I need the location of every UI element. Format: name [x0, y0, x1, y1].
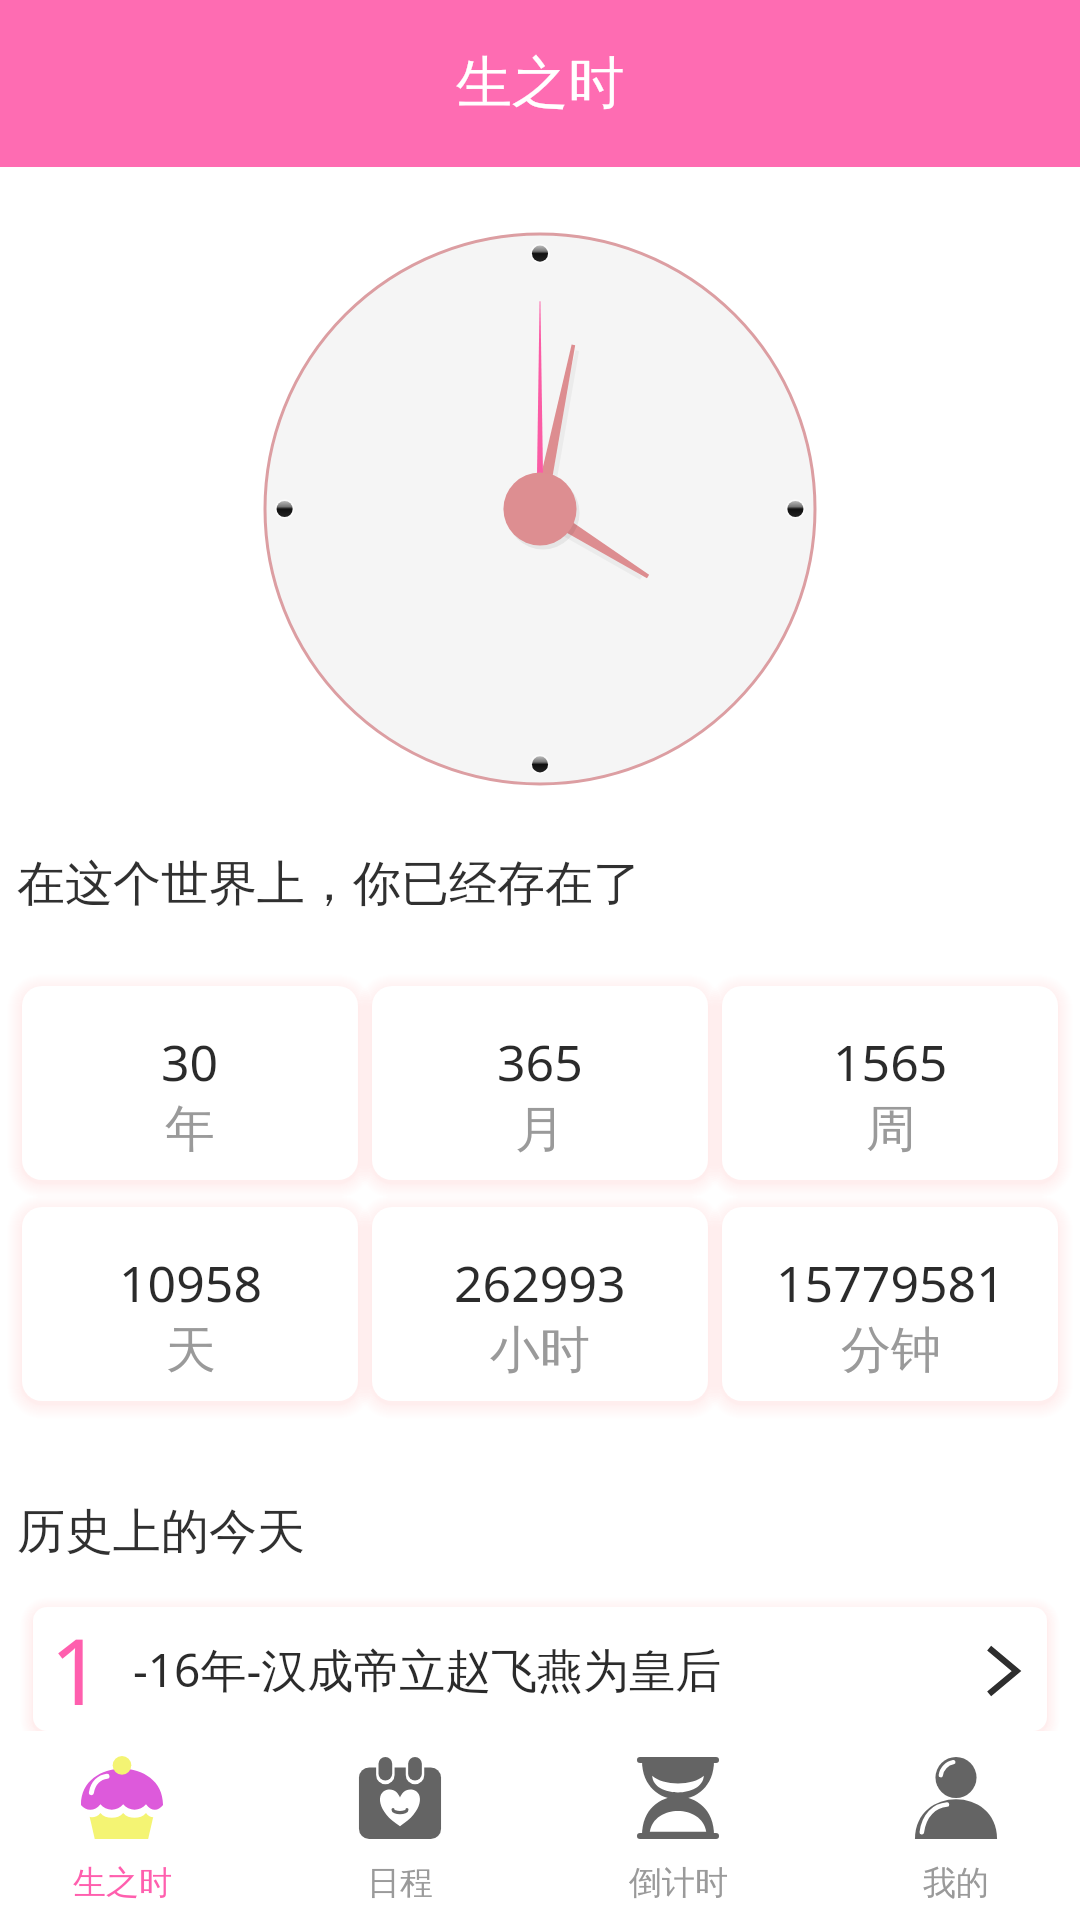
staticText: 在这个世界上，你已经存在了 [17, 854, 641, 914]
staticText: 小时 [490, 1319, 590, 1382]
staticText: 天 [166, 1319, 216, 1382]
staticText: 历史上的今天 [17, 1502, 305, 1562]
button[interactable]: 15779581 [722, 1207, 1058, 1401]
staticText: 日程 [367, 1862, 433, 1904]
button[interactable]: 1565 [722, 986, 1058, 1180]
staticText: 年 [165, 1098, 215, 1161]
staticText: 30 [161, 1028, 219, 1096]
button[interactable]: 365 [372, 986, 708, 1180]
staticText: -16年-汉成帝立赵飞燕为皇后 [133, 1638, 722, 1701]
staticText: 1565 [833, 1028, 948, 1096]
button[interactable]: 生之时 [0, 1731, 261, 1920]
button[interactable]: 日程 [261, 1731, 539, 1920]
button[interactable]: 30 [22, 986, 358, 1180]
staticText: 我的 [923, 1862, 989, 1904]
button[interactable]: 262993 [372, 1207, 708, 1401]
button[interactable]: 倒计时 [539, 1731, 817, 1920]
staticText: 周 [866, 1098, 916, 1161]
staticText: 365 [497, 1028, 583, 1096]
button[interactable]: 10958 [22, 1207, 358, 1401]
button[interactable]: 我的 [817, 1731, 1080, 1920]
staticText: 分钟 [841, 1319, 941, 1382]
staticText: 1 [50, 1607, 103, 1731]
staticText: 15779581 [776, 1249, 1005, 1317]
staticText: 生之时 [73, 1862, 172, 1904]
staticText: 月 [515, 1098, 565, 1161]
staticText: 生之时 [456, 48, 624, 119]
button[interactable]: 1 [33, 1607, 1047, 1731]
other: Open detail [976, 1641, 1032, 1697]
staticText: 10958 [119, 1249, 262, 1317]
staticText: 倒计时 [629, 1862, 728, 1904]
staticText: 262993 [454, 1249, 626, 1317]
